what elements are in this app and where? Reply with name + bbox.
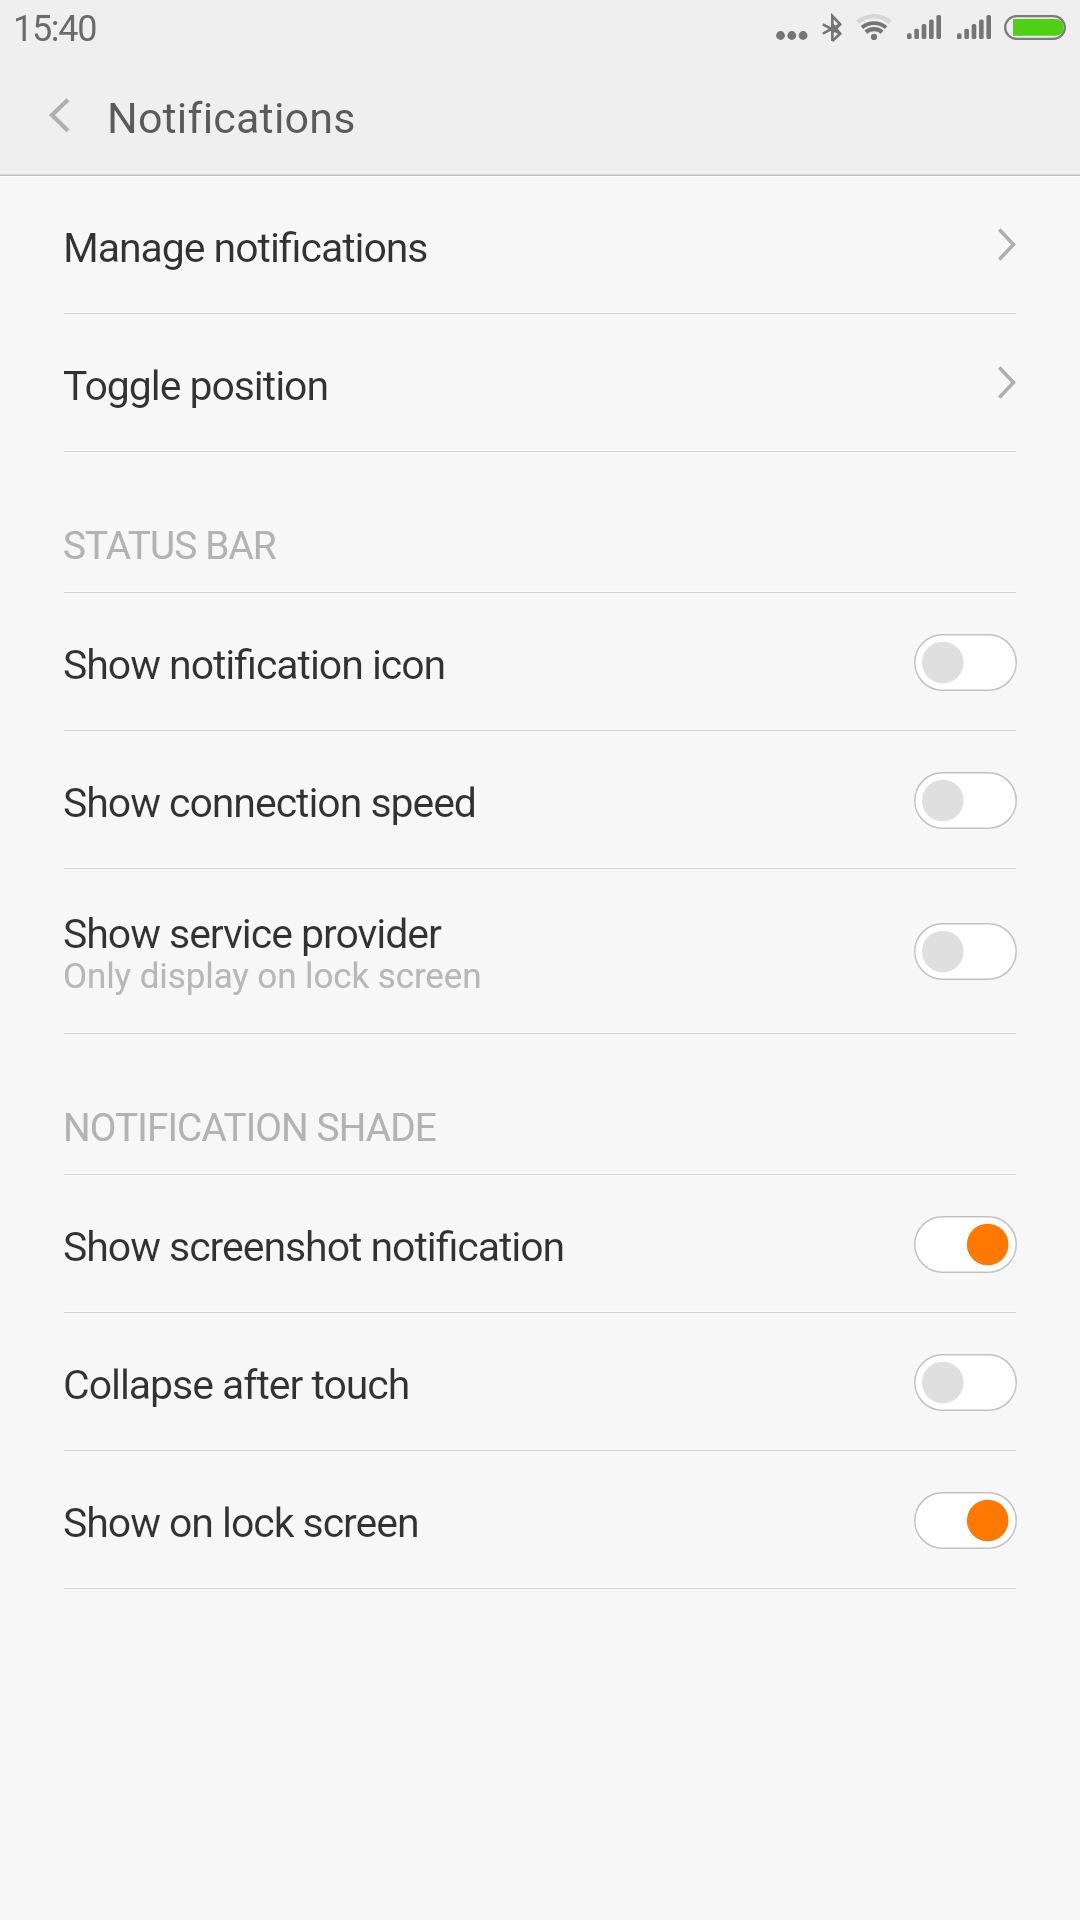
button[interactable]: Manage notifications bbox=[0, 176, 1080, 314]
button[interactable]: Show on lock screen bbox=[0, 1451, 1080, 1589]
staticText: Show screenshot notification bbox=[63, 1223, 565, 1271]
button[interactable]: Back bbox=[0, 57, 106, 176]
staticText: Manage notifications bbox=[63, 224, 998, 272]
staticText: Show on lock screen bbox=[63, 1499, 419, 1547]
staticText: Collapse after touch bbox=[63, 1361, 410, 1409]
button[interactable]: Show on lock screen, on bbox=[914, 1492, 1017, 1549]
button[interactable]: Show screenshot notification, on bbox=[914, 1216, 1017, 1273]
staticText: STATUS BAR bbox=[63, 523, 276, 568]
button[interactable]: Show connection speed, off bbox=[914, 772, 1017, 829]
staticText: Notifications bbox=[107, 93, 356, 143]
button[interactable]: Show service provider bbox=[0, 869, 1080, 1034]
staticText: NOTIFICATION SHADE bbox=[63, 1105, 436, 1150]
staticText: 15:40 bbox=[13, 8, 97, 50]
button[interactable]: Toggle position bbox=[0, 314, 1080, 452]
staticText: Show service provider bbox=[63, 910, 441, 958]
button[interactable]: Show screenshot notification bbox=[0, 1175, 1080, 1313]
button[interactable]: Show notification icon, off bbox=[914, 634, 1017, 691]
button[interactable]: Show connection speed bbox=[0, 731, 1080, 869]
staticText: Toggle position bbox=[63, 362, 998, 410]
staticText: Show connection speed bbox=[63, 779, 476, 827]
button[interactable]: Show service provider, off bbox=[914, 923, 1017, 980]
staticText: Show notification icon bbox=[63, 641, 446, 689]
button[interactable]: Collapse after touch bbox=[0, 1313, 1080, 1451]
button[interactable]: Collapse after touch, off bbox=[914, 1354, 1017, 1411]
staticText: Only display on lock screen bbox=[63, 956, 482, 997]
button[interactable]: Show notification icon bbox=[0, 593, 1080, 731]
